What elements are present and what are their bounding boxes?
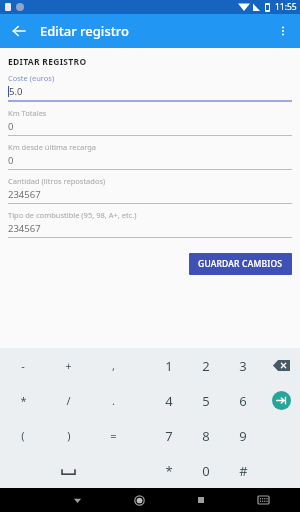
staticText: 8 bbox=[202, 427, 210, 445]
button[interactable]: Back bbox=[4, 16, 34, 46]
button[interactable]: Enter bbox=[272, 391, 291, 410]
button[interactable]: ) bbox=[46, 418, 91, 453]
button[interactable]: Hide keyboard bbox=[46, 488, 108, 512]
button[interactable]: 9 bbox=[224, 418, 262, 453]
staticText: . bbox=[112, 393, 115, 408]
button[interactable]: # bbox=[224, 453, 262, 488]
staticText: / bbox=[66, 393, 71, 408]
button[interactable]: Km desde última recarga bbox=[8, 142, 292, 176]
staticText: + bbox=[65, 358, 72, 373]
staticText: Editar registro bbox=[40, 22, 129, 40]
button[interactable]: Recent apps bbox=[170, 488, 232, 512]
staticText: 5 bbox=[202, 392, 210, 410]
button[interactable]: Km Totales bbox=[8, 108, 292, 142]
staticText: 0 bbox=[202, 462, 210, 480]
staticText: 7 bbox=[165, 427, 173, 445]
button[interactable]: 1 bbox=[150, 348, 187, 383]
staticText: 234567 bbox=[8, 188, 41, 201]
staticText: 11:55 bbox=[275, 1, 297, 13]
staticText: # bbox=[239, 462, 248, 480]
button[interactable]: * bbox=[150, 453, 187, 488]
staticText: 3 bbox=[239, 357, 247, 375]
staticText: 234567 bbox=[8, 222, 41, 235]
button[interactable]: ( bbox=[0, 418, 46, 453]
staticText: = bbox=[110, 428, 117, 443]
staticText: EDITAR REGISTRO bbox=[8, 56, 87, 68]
button[interactable]: Switch keyboard bbox=[232, 488, 294, 512]
button[interactable]: + bbox=[46, 348, 91, 383]
button[interactable]: 7 bbox=[150, 418, 187, 453]
staticText: * bbox=[165, 462, 173, 480]
button[interactable]: Home bbox=[108, 488, 170, 512]
button[interactable]: 8 bbox=[187, 418, 224, 453]
staticText: 0 bbox=[8, 154, 14, 167]
staticText: 9 bbox=[239, 427, 247, 445]
button[interactable]: - bbox=[0, 348, 46, 383]
button[interactable]: More options bbox=[269, 17, 297, 45]
button[interactable] bbox=[46, 453, 91, 488]
staticText: * bbox=[20, 393, 27, 408]
button[interactable]: * bbox=[0, 383, 46, 418]
staticText: GUARDAR CAMBIOS bbox=[198, 258, 283, 270]
button[interactable]: 5 bbox=[187, 383, 224, 418]
button[interactable]: 0 bbox=[187, 453, 224, 488]
staticText: - bbox=[21, 358, 25, 373]
staticText: 4 bbox=[165, 392, 173, 410]
staticText: Cantidad (litros repostados) bbox=[8, 176, 106, 186]
button[interactable]: = bbox=[91, 418, 136, 453]
button[interactable]: 3 bbox=[224, 348, 262, 383]
staticText: ) bbox=[67, 428, 71, 443]
button[interactable]: Coste (euros) bbox=[8, 73, 292, 108]
staticText: 1 bbox=[165, 357, 173, 375]
button[interactable]: , bbox=[91, 348, 136, 383]
staticText: 6 bbox=[239, 392, 247, 410]
button[interactable]: . bbox=[91, 383, 136, 418]
staticText: Km Totales bbox=[8, 108, 47, 118]
staticText: Km desde última recarga bbox=[8, 142, 97, 152]
staticText: Coste (euros) bbox=[8, 73, 55, 83]
button[interactable]: Backspace bbox=[273, 360, 290, 371]
staticText: ( bbox=[21, 428, 25, 443]
staticText: 5.0 bbox=[9, 85, 23, 98]
button[interactable]: Tipo de combustible (95, 98, A+, etc.) bbox=[8, 210, 292, 244]
button[interactable]: 2 bbox=[187, 348, 224, 383]
staticText: , bbox=[112, 358, 115, 373]
button[interactable]: GUARDAR CAMBIOS bbox=[189, 253, 292, 275]
button[interactable]: 4 bbox=[150, 383, 187, 418]
staticText: 0 bbox=[8, 120, 14, 133]
staticText: Tipo de combustible (95, 98, A+, etc.) bbox=[8, 210, 137, 220]
staticText: 2 bbox=[202, 357, 210, 375]
button[interactable]: / bbox=[46, 383, 91, 418]
button[interactable]: Cantidad (litros repostados) bbox=[8, 176, 292, 210]
button[interactable]: 6 bbox=[224, 383, 262, 418]
